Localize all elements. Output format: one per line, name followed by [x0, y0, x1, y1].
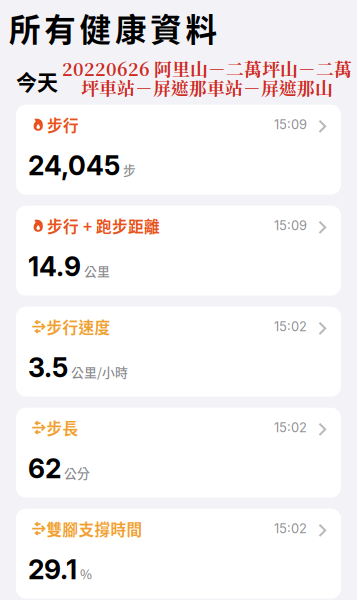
staticText: 坪車站－屏遮那車站－屏遮那山 — [81, 75, 333, 100]
button[interactable]: 步行 + 跑步距離 — [16, 206, 341, 296]
staticText: 步行 — [47, 113, 79, 136]
staticText: 20220626 阿里山－二萬坪山－二萬 — [62, 56, 352, 81]
button[interactable]: 步長 — [16, 408, 341, 498]
staticText: 公分 — [64, 463, 90, 482]
staticText: 步行 + 跑步距離 — [47, 214, 160, 237]
staticText: 14.9 — [28, 250, 81, 283]
staticText: 3.5 — [28, 351, 68, 384]
staticText: 公里/小時 — [71, 362, 128, 381]
staticText: 24,045 — [28, 149, 120, 182]
button[interactable]: 步行 — [16, 105, 341, 195]
staticText: 15:09 — [274, 218, 307, 233]
staticText: 15:02 — [274, 420, 307, 435]
staticText: 15:02 — [274, 319, 307, 334]
staticText: 步長 — [47, 416, 79, 439]
staticText: 雙腳支撐時間 — [47, 517, 143, 540]
staticText: 步 — [123, 160, 136, 179]
button[interactable]: 今天 — [16, 66, 58, 96]
staticText: 29.1 — [28, 553, 77, 586]
button[interactable]: 雙腳支撐時間 — [16, 509, 341, 599]
staticText: 62 — [28, 452, 61, 485]
staticText: 所有健康資料 — [9, 5, 217, 51]
staticText: 步行速度 — [47, 315, 111, 338]
staticText: % — [80, 564, 92, 583]
button[interactable]: 步行速度 — [16, 307, 341, 397]
staticText: 15:09 — [274, 117, 307, 132]
staticText: 今天 — [16, 66, 58, 96]
staticText: 公里 — [84, 261, 110, 280]
staticText: 15:02 — [274, 521, 307, 536]
